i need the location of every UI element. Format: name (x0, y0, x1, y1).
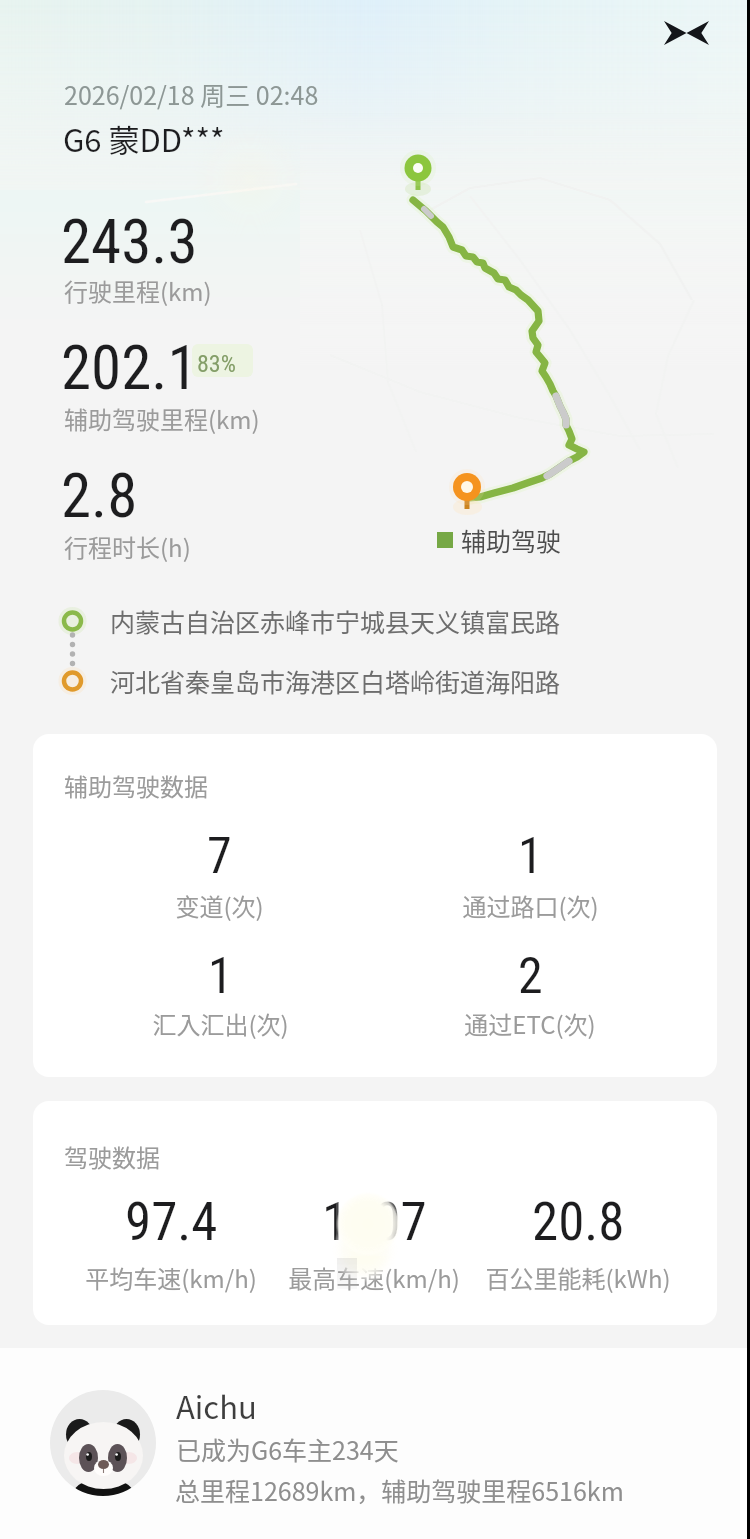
button[interactable] (110, 939, 330, 1039)
button[interactable] (468, 1183, 688, 1283)
staticText: 1 (208, 947, 233, 1006)
staticText: 百公里能耗(kWh) (485, 1260, 671, 1295)
button[interactable] (109, 819, 329, 919)
button[interactable]: Aichu (0, 1348, 750, 1539)
staticText: 通过ETC(次) (464, 1006, 596, 1041)
staticText: 辅助驾驶数据 (64, 768, 208, 803)
staticText: 1 (518, 827, 543, 886)
staticText: 2.8 (61, 460, 138, 531)
staticText: 20.8 (532, 1191, 625, 1253)
staticText: 内蒙古自治区赤峰市宁城县天义镇富民路 (110, 603, 561, 639)
button[interactable]: Close (655, 2, 717, 64)
staticText: 平均车速(km/h) (85, 1260, 257, 1295)
staticText: 243.3 (61, 206, 198, 277)
staticText: 1107 (322, 1191, 427, 1253)
button[interactable] (420, 819, 640, 919)
staticText: Aichu (176, 1383, 257, 1428)
staticText: 河北省秦皇岛市海港区白塔岭街道海阳路 (110, 663, 561, 699)
staticText: 辅助驾驶 (461, 522, 562, 558)
staticText: 最高车速(km/h) (288, 1260, 460, 1295)
staticText: 行驶里程(km) (64, 273, 212, 308)
staticText: 已成为G6车主234天 (176, 1431, 399, 1467)
staticText: 2026/02/18 周三 02:48 (64, 76, 319, 112)
staticText: 行程时长(h) (64, 529, 191, 564)
staticText: 83% (197, 350, 236, 378)
staticText: 汇入汇出(次) (152, 1006, 289, 1041)
button[interactable] (264, 1183, 484, 1283)
staticText: 总里程12689km，辅助驾驶里程6516km (175, 1472, 624, 1508)
staticText: 通过路口(次) (462, 888, 599, 923)
staticText: 变道(次) (175, 888, 264, 923)
staticText: G6 蒙DD*** (63, 116, 225, 161)
staticText: 7 (207, 827, 232, 886)
staticText: 202.1 (61, 332, 198, 403)
staticText: 2 (518, 947, 543, 1006)
staticText: 97.4 (125, 1191, 218, 1253)
staticText: 驾驶数据 (64, 1139, 160, 1174)
button[interactable] (420, 939, 640, 1039)
staticText: 辅助驾驶里程(km) (64, 401, 260, 436)
button[interactable] (61, 1183, 281, 1283)
